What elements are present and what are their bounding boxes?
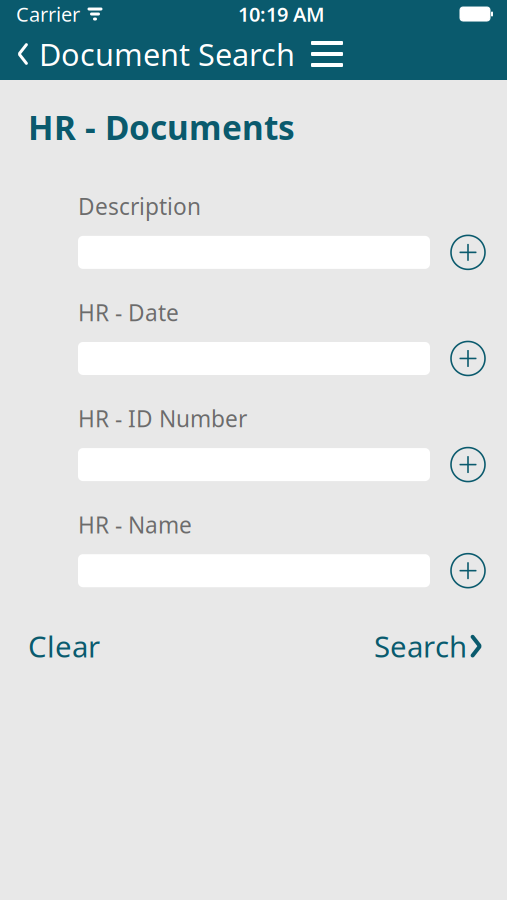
staticText: HR - Name: [78, 510, 192, 540]
staticText: HR - Date: [78, 297, 179, 327]
button[interactable]: Menu: [301, 28, 353, 80]
button[interactable]: Add HR - Date: [444, 334, 492, 382]
button[interactable]: Add Description: [444, 228, 492, 276]
staticText: Clear: [28, 627, 100, 666]
staticText: 10:19 AM: [238, 1, 325, 27]
staticText: Document Search: [39, 34, 295, 74]
button[interactable]: Add HR - Name: [444, 547, 492, 595]
button[interactable]: Search: [370, 619, 488, 674]
staticText: Description: [78, 191, 201, 221]
button[interactable]: Document Search: [0, 28, 301, 80]
staticText: Search: [374, 627, 467, 666]
staticText: HR - Documents: [28, 105, 295, 149]
staticText: HR - ID Number: [78, 403, 247, 434]
staticText: Carrier: [16, 1, 80, 27]
button[interactable]: Clear: [24, 619, 104, 674]
button[interactable]: Add HR - ID Number: [444, 441, 492, 489]
